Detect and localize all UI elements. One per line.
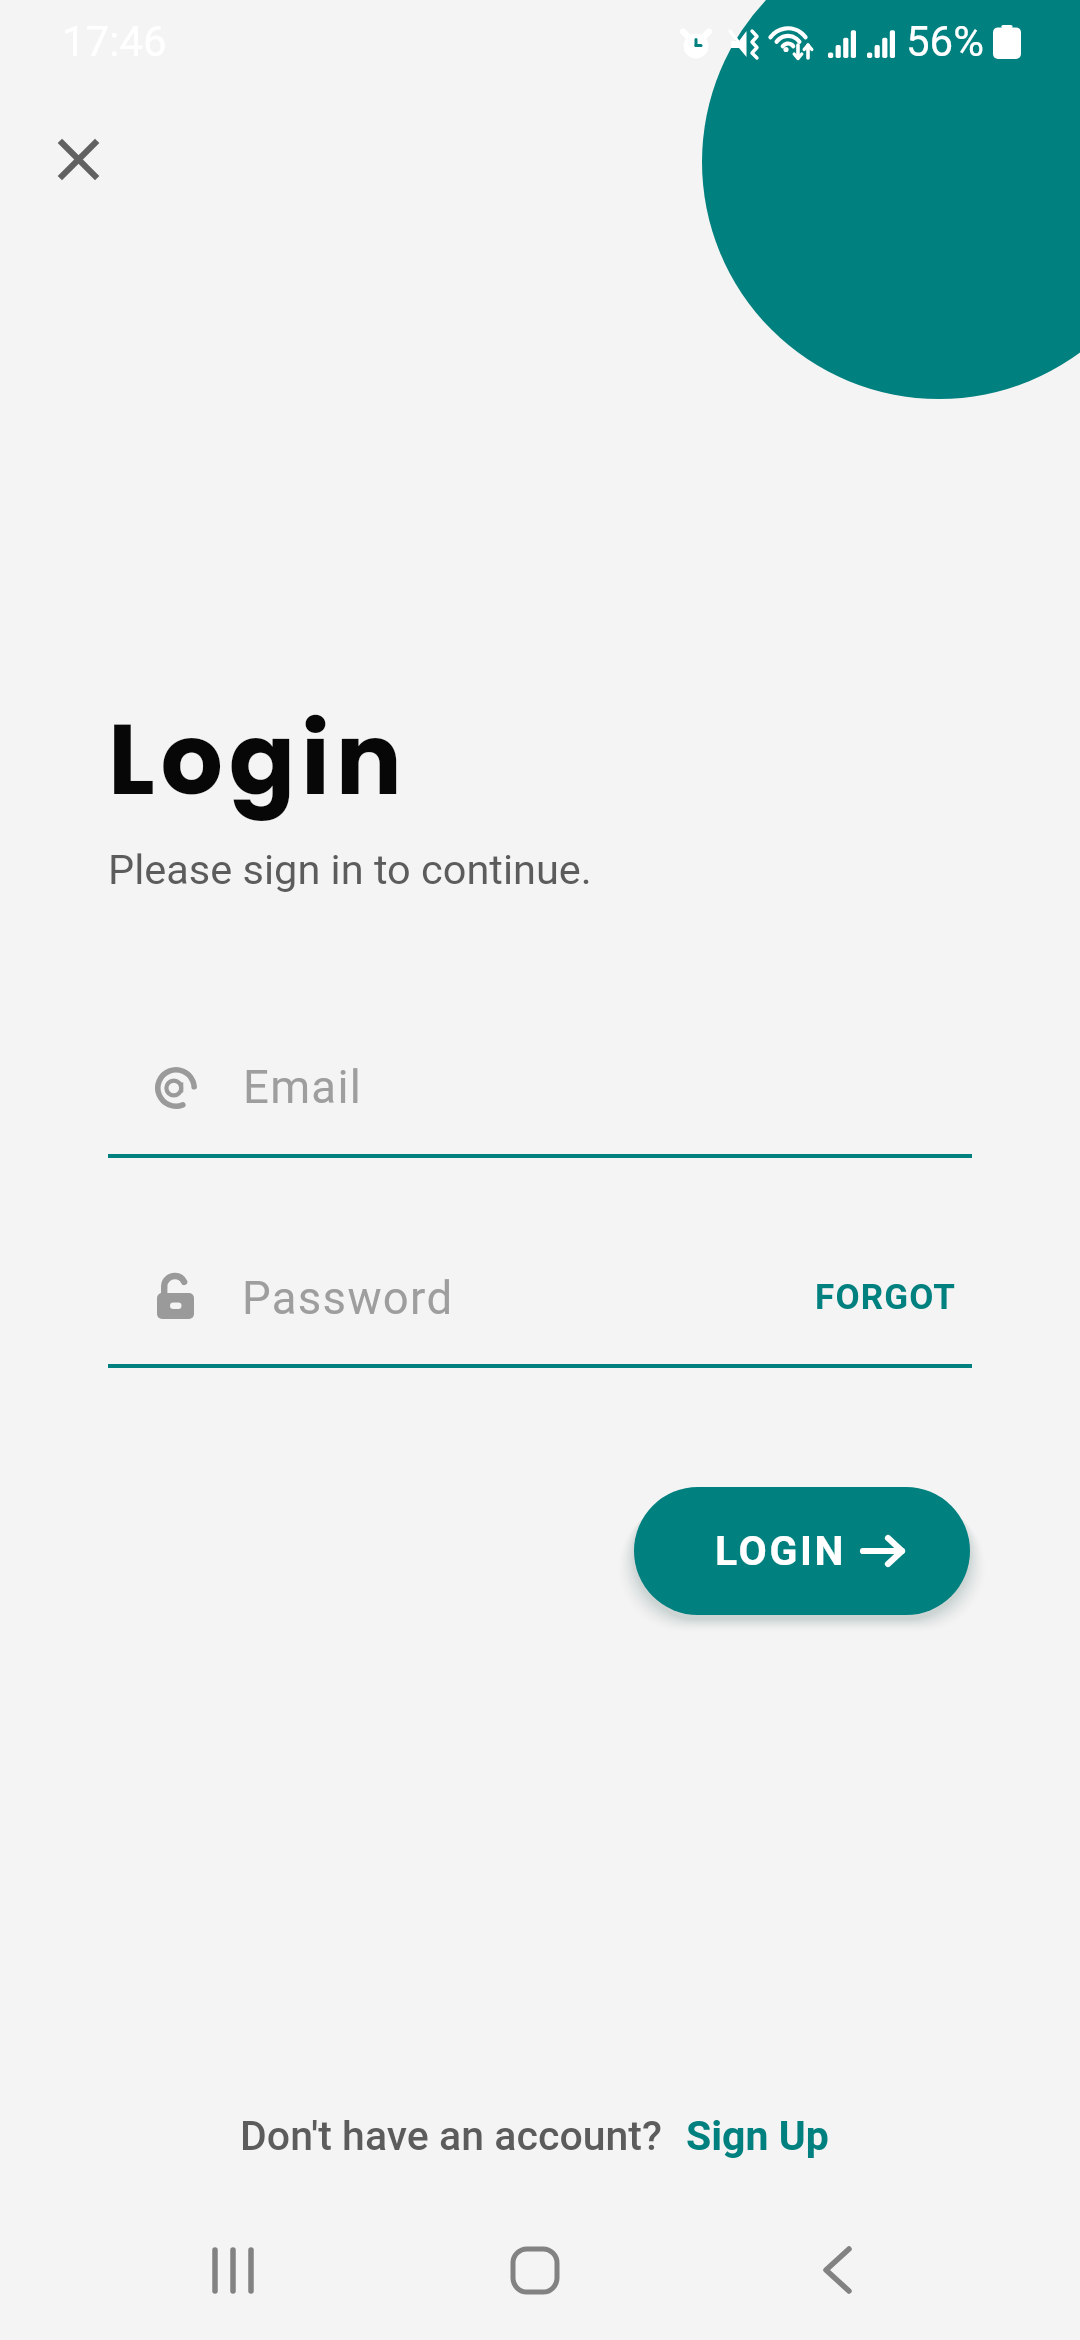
staticText: Please sign in to continue. (108, 845, 592, 894)
staticText: 56% (906, 17, 984, 66)
button[interactable]: Home (465, 2200, 605, 2340)
button[interactable]: Back (767, 2200, 907, 2340)
staticText: Don't have an account? (240, 2112, 662, 2160)
button[interactable]: Close (38, 119, 119, 199)
staticText: Email (243, 1061, 363, 1114)
button[interactable]: Don't have an account? (240, 2112, 662, 2160)
staticText: Sign Up (686, 2112, 829, 2160)
staticText: Login (108, 691, 408, 828)
other: Email (155, 1067, 197, 1109)
button[interactable]: Email (108, 1026, 972, 1160)
staticText: Password (242, 1272, 454, 1325)
button[interactable]: Sign Up (686, 2112, 829, 2160)
button[interactable]: LOGIN (634, 1487, 970, 1615)
button[interactable]: Recents (163, 2200, 303, 2340)
button[interactable]: Password (108, 1236, 972, 1370)
staticText: 17:46 (62, 17, 167, 66)
other: Password (157, 1271, 194, 1319)
button[interactable]: FORGOT (810, 1262, 962, 1332)
staticText: LOGIN (715, 1527, 847, 1575)
staticText: FORGOT (815, 1277, 957, 1318)
